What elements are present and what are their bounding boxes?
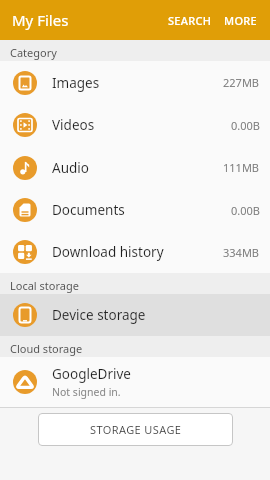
staticText: Local storage (10, 278, 79, 293)
staticText: Device storage (52, 306, 146, 324)
staticText: Not signed in. (52, 385, 121, 399)
staticText: Videos (52, 116, 95, 134)
staticText: 0.00B (231, 203, 260, 218)
staticText: MORE (224, 13, 258, 28)
button[interactable]: Images (0, 61, 270, 104)
staticText: Cloud storage (10, 341, 83, 356)
button[interactable]: SEARCH (162, 3, 218, 38)
staticText: Documents (52, 201, 125, 219)
staticText: STORAGE USAGE (90, 422, 182, 437)
staticText: Images (52, 74, 100, 92)
staticText: Category (10, 45, 57, 60)
staticText: 111MB (223, 160, 260, 175)
staticText: My Files (12, 10, 69, 30)
button[interactable]: Device storage (0, 294, 270, 336)
button[interactable]: GoogleDrive (0, 357, 270, 407)
button[interactable]: STORAGE USAGE (38, 413, 233, 446)
button[interactable]: Audio (0, 146, 270, 189)
staticText: Download history (52, 243, 164, 261)
staticText: GoogleDrive (52, 365, 131, 383)
staticText: Audio (52, 159, 89, 177)
staticText: SEARCH (168, 13, 212, 28)
button[interactable]: Download history (0, 231, 270, 273)
button[interactable]: MORE (218, 3, 258, 38)
staticText: 227MB (223, 75, 260, 90)
button[interactable]: Documents (0, 189, 270, 231)
staticText: 0.00B (231, 118, 260, 133)
button[interactable]: Videos (0, 104, 270, 146)
staticText: 334MB (223, 245, 260, 260)
